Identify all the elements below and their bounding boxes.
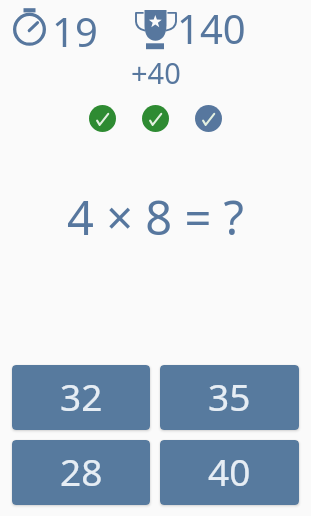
staticText: 28: [60, 446, 103, 496]
staticText: 19: [52, 4, 98, 58]
button[interactable]: Score 140 points: [133, 0, 248, 54]
button[interactable]: 35: [160, 365, 299, 430]
staticText: 35: [208, 371, 251, 421]
staticText: 4 × 8 = ?: [67, 185, 244, 249]
button[interactable]: 40: [160, 440, 299, 505]
staticText: 140: [177, 1, 246, 55]
button[interactable]: Time remaining 19 seconds: [11, 3, 95, 57]
button[interactable]: 28: [12, 440, 150, 505]
staticText: +40: [131, 53, 181, 92]
staticText: 40: [208, 446, 251, 496]
staticText: 32: [60, 371, 103, 421]
button[interactable]: 32: [12, 365, 150, 430]
